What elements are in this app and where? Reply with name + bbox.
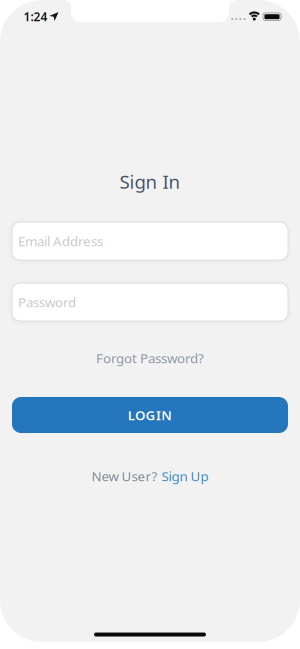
button[interactable]: Password	[12, 283, 288, 321]
button[interactable]: Email Address	[12, 222, 288, 260]
staticText: Forgot Password?	[96, 349, 204, 367]
button[interactable]: Forgot Password?	[96, 349, 204, 367]
staticText: Sign In	[119, 169, 180, 194]
staticText: 1:24	[23, 8, 47, 24]
staticText: Password	[18, 293, 76, 311]
staticText: Email Address	[18, 232, 103, 250]
staticText: Sign Up	[161, 467, 208, 485]
button[interactable]: Sign Up	[161, 467, 208, 485]
staticText: LOGIN	[128, 406, 172, 424]
staticText: New User?	[91, 467, 157, 485]
button[interactable]: LOGIN	[12, 397, 288, 433]
